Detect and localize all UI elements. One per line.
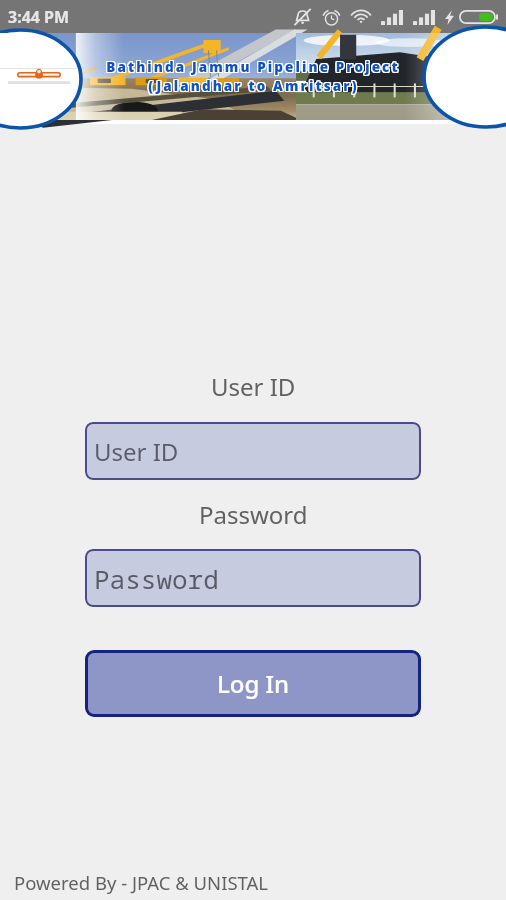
staticText: (Jalandhar to Amritsar) xyxy=(147,78,358,96)
staticText: User ID xyxy=(211,370,296,403)
staticText: (Jalandhar to Amritsar) xyxy=(147,76,358,94)
other: Wi-Fi xyxy=(349,8,373,26)
other: Alarm set xyxy=(323,9,340,26)
staticText: Bathinda Jammu Pipeline Project xyxy=(107,59,401,77)
staticText: Powered By - JPAC & UNISTAL xyxy=(14,870,269,895)
staticText: (Jalandhar to Amritsar) xyxy=(148,77,359,95)
staticText: (Jalandhar to Amritsar) xyxy=(147,77,358,95)
staticText: Password xyxy=(94,561,219,596)
staticText: Bathinda Jammu Pipeline Project xyxy=(105,58,399,76)
staticText: Bathinda Jammu Pipeline Project xyxy=(105,57,399,75)
staticText: 3:44 PM xyxy=(8,6,70,28)
staticText: (Jalandhar to Amritsar) xyxy=(149,76,360,94)
staticText: (Jalandhar to Amritsar) xyxy=(149,78,360,96)
staticText: Bathinda Jammu Pipeline Project xyxy=(106,57,400,75)
staticText: Bathinda Jammu Pipeline Project xyxy=(105,59,399,77)
staticText: Log In xyxy=(217,667,290,700)
staticText: (Jalandhar to Amritsar) xyxy=(148,76,359,94)
other: Silent mode xyxy=(292,7,315,27)
staticText: Bathinda Jammu Pipeline Project xyxy=(107,57,401,75)
staticText: Password xyxy=(199,498,308,531)
staticText: Bathinda Jammu Pipeline Project xyxy=(107,58,401,76)
button[interactable]: User ID xyxy=(85,422,421,480)
staticText: User ID xyxy=(94,435,179,468)
button[interactable]: Log In xyxy=(85,650,421,717)
staticText: Bathinda Jammu Pipeline Project xyxy=(106,59,400,77)
staticText: (Jalandhar to Amritsar) xyxy=(148,78,359,96)
staticText: (Jalandhar to Amritsar) xyxy=(149,77,360,95)
staticText: Bathinda Jammu Pipeline Project xyxy=(106,58,400,76)
button[interactable]: Password xyxy=(85,549,421,607)
